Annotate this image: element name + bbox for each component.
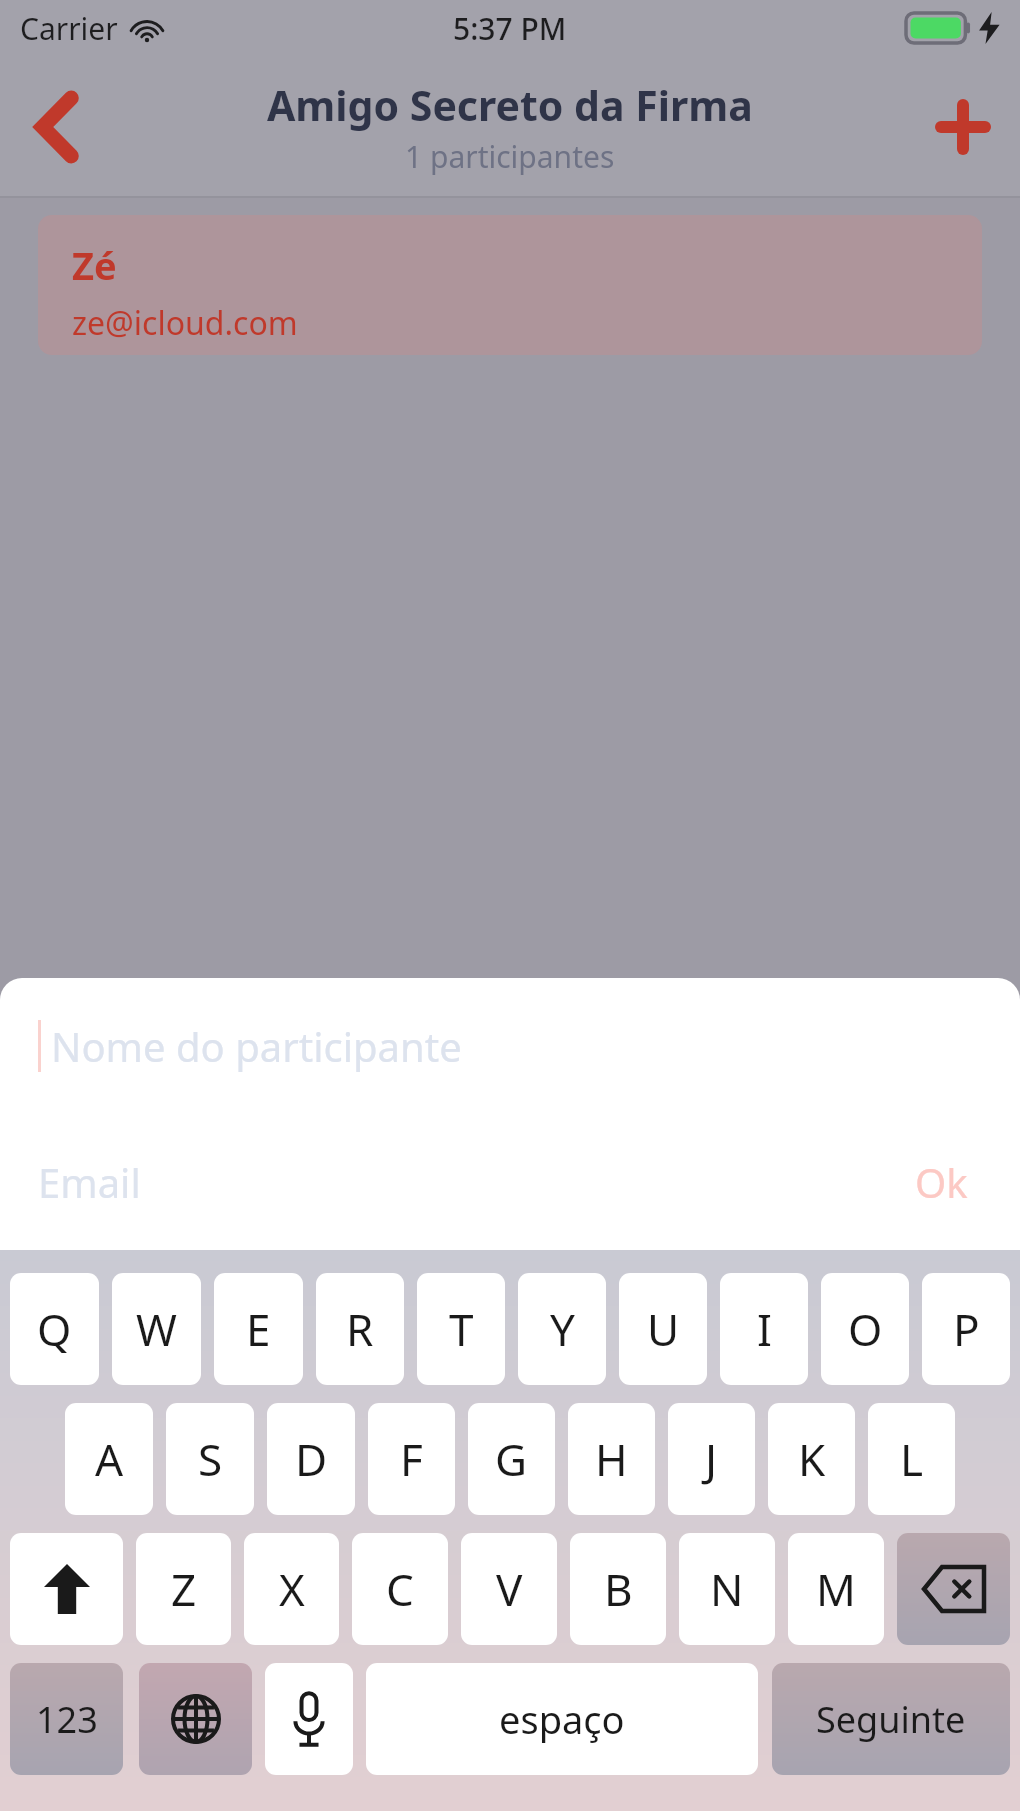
staticText: Y bbox=[550, 1299, 575, 1359]
staticText: 1 participantes bbox=[405, 136, 615, 177]
staticText: N bbox=[710, 1559, 744, 1619]
staticText: M bbox=[816, 1559, 856, 1619]
button[interactable]: H bbox=[568, 1403, 655, 1515]
staticText: Amigo Secreto da Firma bbox=[267, 77, 753, 133]
staticText: espaço bbox=[499, 1693, 625, 1745]
staticText: E bbox=[246, 1299, 271, 1359]
button[interactable]: Seguinte bbox=[772, 1663, 1010, 1775]
button[interactable]: D bbox=[267, 1403, 355, 1515]
staticText: Seguinte bbox=[816, 1695, 966, 1744]
staticText: Carrier bbox=[20, 8, 118, 49]
staticText: K bbox=[798, 1429, 826, 1489]
button[interactable]: P bbox=[922, 1273, 1010, 1385]
button[interactable]: Y bbox=[518, 1273, 606, 1385]
button[interactable]: Zé bbox=[38, 215, 982, 355]
staticText: R bbox=[346, 1299, 374, 1359]
staticText: P bbox=[953, 1299, 980, 1359]
button[interactable]: X bbox=[244, 1533, 339, 1645]
button[interactable]: Email bbox=[38, 1155, 901, 1209]
staticText: T bbox=[449, 1299, 474, 1359]
staticText: I bbox=[757, 1299, 772, 1359]
button[interactable]: T bbox=[417, 1273, 505, 1385]
button[interactable]: I bbox=[720, 1273, 808, 1385]
staticText: X bbox=[279, 1559, 305, 1619]
staticText: Email bbox=[38, 1155, 141, 1209]
staticText: C bbox=[386, 1559, 414, 1619]
button[interactable]: Q bbox=[10, 1273, 99, 1385]
button[interactable]: V bbox=[461, 1533, 557, 1645]
staticText: Ok bbox=[915, 1155, 968, 1209]
button[interactable]: Dictation bbox=[265, 1663, 353, 1775]
staticText: ze@icloud.com bbox=[72, 301, 298, 345]
button[interactable]: F bbox=[368, 1403, 455, 1515]
staticText: L bbox=[900, 1429, 924, 1489]
staticText: Q bbox=[37, 1299, 72, 1359]
button[interactable]: Add participant bbox=[920, 84, 1006, 170]
button[interactable]: Z bbox=[136, 1533, 231, 1645]
staticText: H bbox=[595, 1429, 628, 1489]
button[interactable]: U bbox=[619, 1273, 707, 1385]
button[interactable]: Shift bbox=[10, 1533, 123, 1645]
button[interactable]: B bbox=[570, 1533, 666, 1645]
button[interactable]: N bbox=[679, 1533, 775, 1645]
staticText: Z bbox=[171, 1559, 197, 1619]
staticText: B bbox=[604, 1559, 633, 1619]
button[interactable]: W bbox=[112, 1273, 201, 1385]
staticText: S bbox=[198, 1429, 223, 1489]
button[interactable]: L bbox=[868, 1403, 955, 1515]
button[interactable]: Ok bbox=[901, 1147, 982, 1217]
button[interactable]: Change keyboard language bbox=[139, 1663, 252, 1775]
staticText: 123 bbox=[36, 1695, 98, 1744]
button[interactable]: Nome do participante bbox=[0, 978, 1020, 1114]
staticText: F bbox=[400, 1429, 423, 1489]
staticText: O bbox=[848, 1299, 883, 1359]
button[interactable]: G bbox=[468, 1403, 555, 1515]
staticText: D bbox=[295, 1429, 328, 1489]
staticText: G bbox=[495, 1429, 528, 1489]
button[interactable]: K bbox=[768, 1403, 855, 1515]
button[interactable]: C bbox=[352, 1533, 448, 1645]
button[interactable]: M bbox=[788, 1533, 884, 1645]
button[interactable]: Backspace bbox=[897, 1533, 1010, 1645]
button[interactable]: J bbox=[668, 1403, 755, 1515]
staticText: U bbox=[647, 1299, 680, 1359]
staticText: Zé bbox=[72, 239, 117, 291]
staticText: 5:37 PM bbox=[453, 8, 567, 49]
button[interactable]: A bbox=[65, 1403, 153, 1515]
staticText: W bbox=[136, 1299, 177, 1359]
staticText: Nome do participante bbox=[51, 1019, 462, 1073]
button[interactable]: espaço bbox=[366, 1663, 758, 1775]
button[interactable]: Back bbox=[14, 84, 100, 170]
button[interactable]: 123 bbox=[10, 1663, 123, 1775]
staticText: J bbox=[705, 1429, 718, 1489]
button[interactable]: O bbox=[821, 1273, 909, 1385]
button[interactable]: E bbox=[214, 1273, 303, 1385]
button[interactable]: S bbox=[166, 1403, 254, 1515]
button[interactable]: R bbox=[316, 1273, 404, 1385]
staticText: A bbox=[95, 1429, 124, 1489]
staticText: V bbox=[496, 1559, 523, 1619]
